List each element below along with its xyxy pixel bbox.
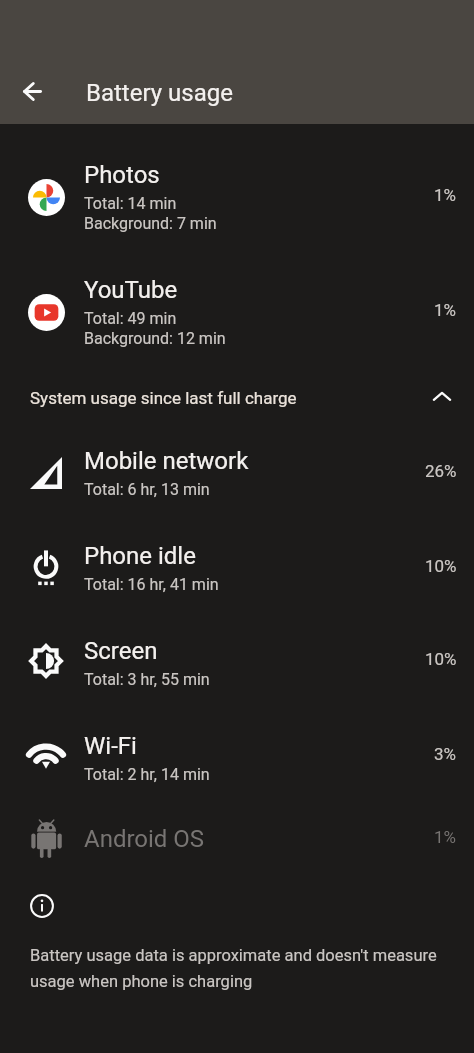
button[interactable]: Back bbox=[10, 69, 55, 114]
button[interactable]: System usage since last full charge bbox=[0, 372, 474, 416]
staticText: Phone idle bbox=[84, 542, 196, 570]
button[interactable]: Phone idle bbox=[0, 521, 474, 609]
staticText: System usage since last full charge bbox=[30, 388, 297, 408]
staticText: Total: 3 hr, 55 min bbox=[84, 670, 210, 689]
button[interactable]: Screen bbox=[0, 616, 474, 704]
staticText: Total: 16 hr, 41 min bbox=[84, 575, 219, 594]
staticText: Background: 12 min bbox=[84, 329, 226, 348]
staticText: Screen bbox=[84, 637, 158, 665]
staticText: 1% bbox=[434, 185, 457, 205]
staticText: YouTube bbox=[84, 276, 178, 304]
staticText: Background: 7 min bbox=[84, 214, 217, 233]
staticText: 10% bbox=[425, 649, 457, 669]
button[interactable]: YouTube bbox=[0, 255, 474, 367]
staticText: Battery usage data is approximate and do… bbox=[30, 946, 474, 991]
staticText: Battery usage bbox=[86, 79, 233, 107]
button[interactable]: Android OS bbox=[0, 804, 474, 892]
staticText: Photos bbox=[84, 161, 160, 189]
staticText: Total: 6 hr, 13 min bbox=[84, 480, 210, 499]
staticText: 26% bbox=[425, 461, 457, 481]
staticText: Total: 49 min bbox=[84, 309, 177, 328]
staticText: Wi-Fi bbox=[84, 732, 137, 760]
button[interactable]: Photos bbox=[0, 140, 474, 252]
staticText: Mobile network bbox=[84, 447, 249, 475]
staticText: Total: 14 min bbox=[84, 194, 177, 213]
other: Collapse bbox=[430, 385, 454, 409]
other: Information bbox=[30, 894, 54, 918]
button[interactable]: Mobile network bbox=[0, 426, 474, 514]
staticText: Android OS bbox=[84, 825, 205, 853]
button[interactable]: Wi-Fi bbox=[0, 711, 474, 799]
staticText: Total: 2 hr, 14 min bbox=[84, 765, 210, 784]
staticText: 10% bbox=[425, 556, 457, 576]
staticText: 3% bbox=[434, 744, 457, 764]
staticText: 1% bbox=[434, 300, 457, 320]
staticText: 1% bbox=[434, 827, 457, 847]
